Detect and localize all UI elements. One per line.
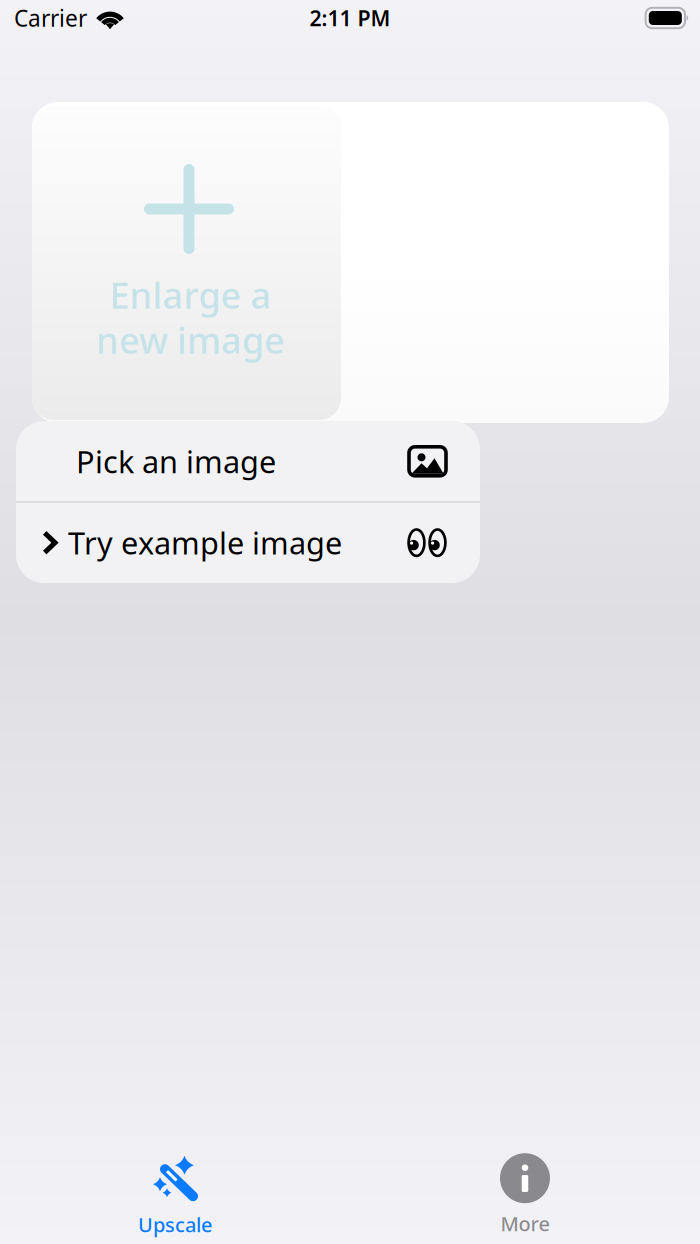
button[interactable]: More xyxy=(350,1146,700,1244)
staticText: 2:11 PM xyxy=(309,4,390,32)
button[interactable]: Try example image xyxy=(16,503,480,583)
staticText: Enlarge a xyxy=(109,271,271,319)
staticText: Carrier xyxy=(14,3,87,33)
staticText: new image xyxy=(96,316,285,364)
staticText: More xyxy=(500,1210,549,1237)
staticText: Upscale xyxy=(138,1211,212,1238)
button[interactable]: Enlarge a xyxy=(32,102,669,423)
staticText: Pick an image xyxy=(76,441,276,482)
staticText: Try example image xyxy=(68,522,342,563)
button[interactable]: Upscale xyxy=(0,1146,350,1244)
button[interactable]: Pick an image xyxy=(16,421,480,501)
